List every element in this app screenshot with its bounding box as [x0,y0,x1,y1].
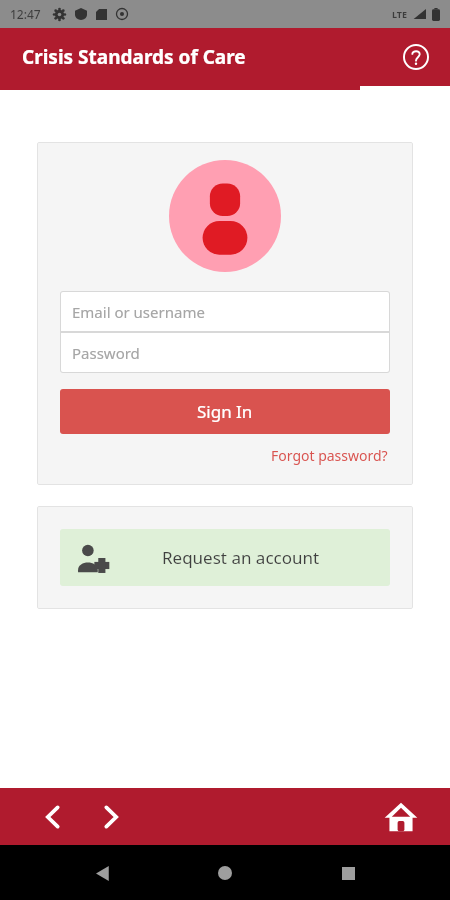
button[interactable]: Sign In [60,389,390,434]
staticText: Email or username [72,302,205,322]
button[interactable]: Request an account [60,529,390,586]
button[interactable]: Forgot password? [269,444,390,467]
button[interactable]: Recents [328,853,368,893]
staticText: 12:47 [10,6,41,22]
button[interactable]: Home [376,792,426,842]
staticText: LTE [392,8,408,20]
button[interactable]: Home [205,853,245,893]
staticText: Password [72,343,140,363]
button[interactable]: Help [396,37,436,77]
staticText: Crisis Standards of Care [22,44,246,70]
button[interactable]: Forward [88,794,134,840]
button[interactable]: Email or username [60,291,390,332]
button[interactable]: Back [83,853,123,893]
staticText: Sign In [197,400,253,423]
button[interactable]: Back [30,794,76,840]
button[interactable]: Password [60,332,390,373]
staticText: Request an account [162,546,320,569]
